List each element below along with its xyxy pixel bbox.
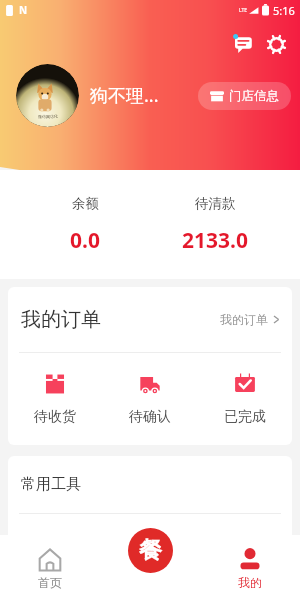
- button[interactable]: 门店信息: [198, 82, 291, 110]
- button[interactable]: 余额: [20, 195, 150, 255]
- staticText: 门店信息: [229, 88, 279, 104]
- button[interactable]: Order: [128, 528, 173, 573]
- button[interactable]: Messages: [229, 30, 257, 58]
- staticText: 0.0: [70, 226, 100, 255]
- staticText: 狗不理...: [90, 83, 159, 108]
- staticText: LTE: [239, 7, 248, 14]
- staticText: 已完成: [224, 408, 266, 426]
- button[interactable]: Settings: [262, 30, 290, 58]
- button[interactable]: 我的: [200, 548, 300, 590]
- staticText: 我的订单: [220, 312, 268, 327]
- button[interactable]: 待收货: [8, 373, 102, 426]
- button[interactable]: 常用工具: [8, 456, 292, 513]
- staticText: 待确认: [129, 408, 171, 426]
- staticText: 2133.0: [182, 226, 248, 255]
- staticText: 首页: [38, 575, 62, 590]
- button[interactable]: 首页: [0, 548, 100, 590]
- staticText: 餐: [139, 536, 162, 565]
- staticText: 常用工具: [21, 475, 81, 494]
- staticText: 待清款: [195, 195, 236, 212]
- staticText: 我的订单: [21, 307, 101, 332]
- staticText: 5:16: [273, 3, 295, 18]
- staticText: 我的: [238, 575, 262, 590]
- button[interactable]: 我的订单: [8, 287, 292, 352]
- staticText: 余额: [72, 195, 99, 212]
- button[interactable]: 待确认: [102, 373, 197, 426]
- staticText: N: [19, 3, 28, 17]
- button[interactable]: 已完成: [197, 373, 292, 426]
- staticText: 待收货: [34, 408, 76, 426]
- button[interactable]: 待清款: [150, 195, 280, 255]
- staticText: 微信网店化: [38, 114, 58, 119]
